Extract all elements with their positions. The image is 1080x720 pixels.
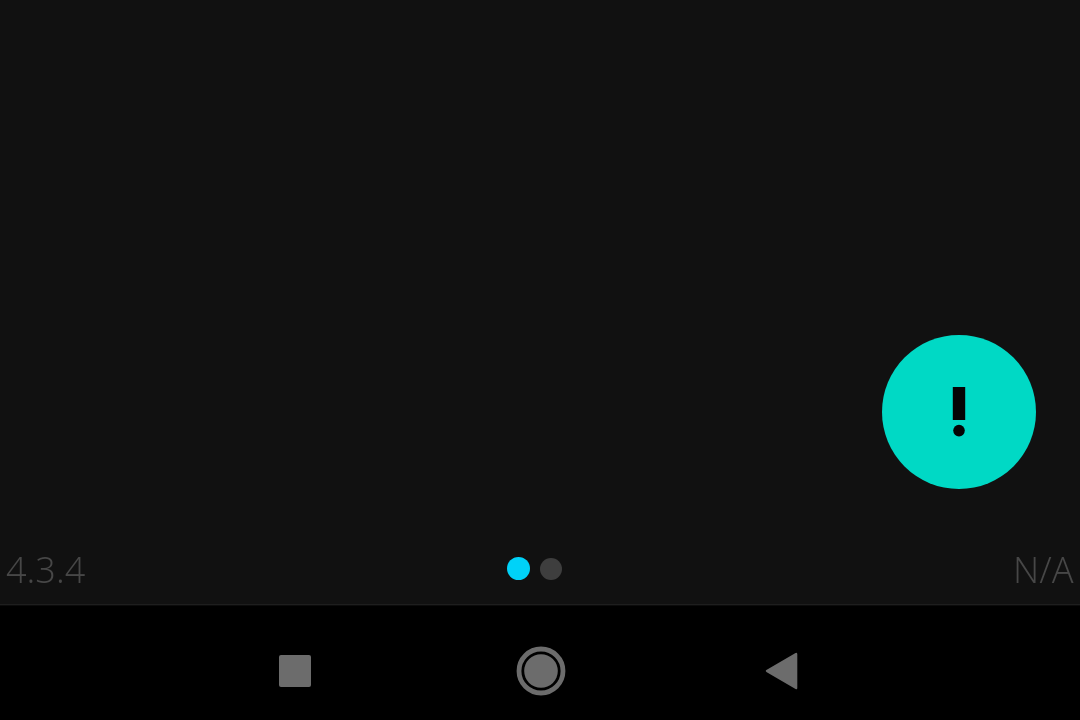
staticText: 4.3.4: [6, 545, 86, 594]
staticText: N/A: [1013, 545, 1074, 594]
button[interactable]: Recents: [245, 621, 345, 720]
button[interactable]: Page 1: [507, 557, 530, 580]
button[interactable]: Page 2: [540, 558, 562, 580]
button[interactable]: Back: [731, 621, 831, 720]
button[interactable]: Home: [491, 621, 591, 720]
button[interactable]: Warning: [882, 335, 1036, 489]
